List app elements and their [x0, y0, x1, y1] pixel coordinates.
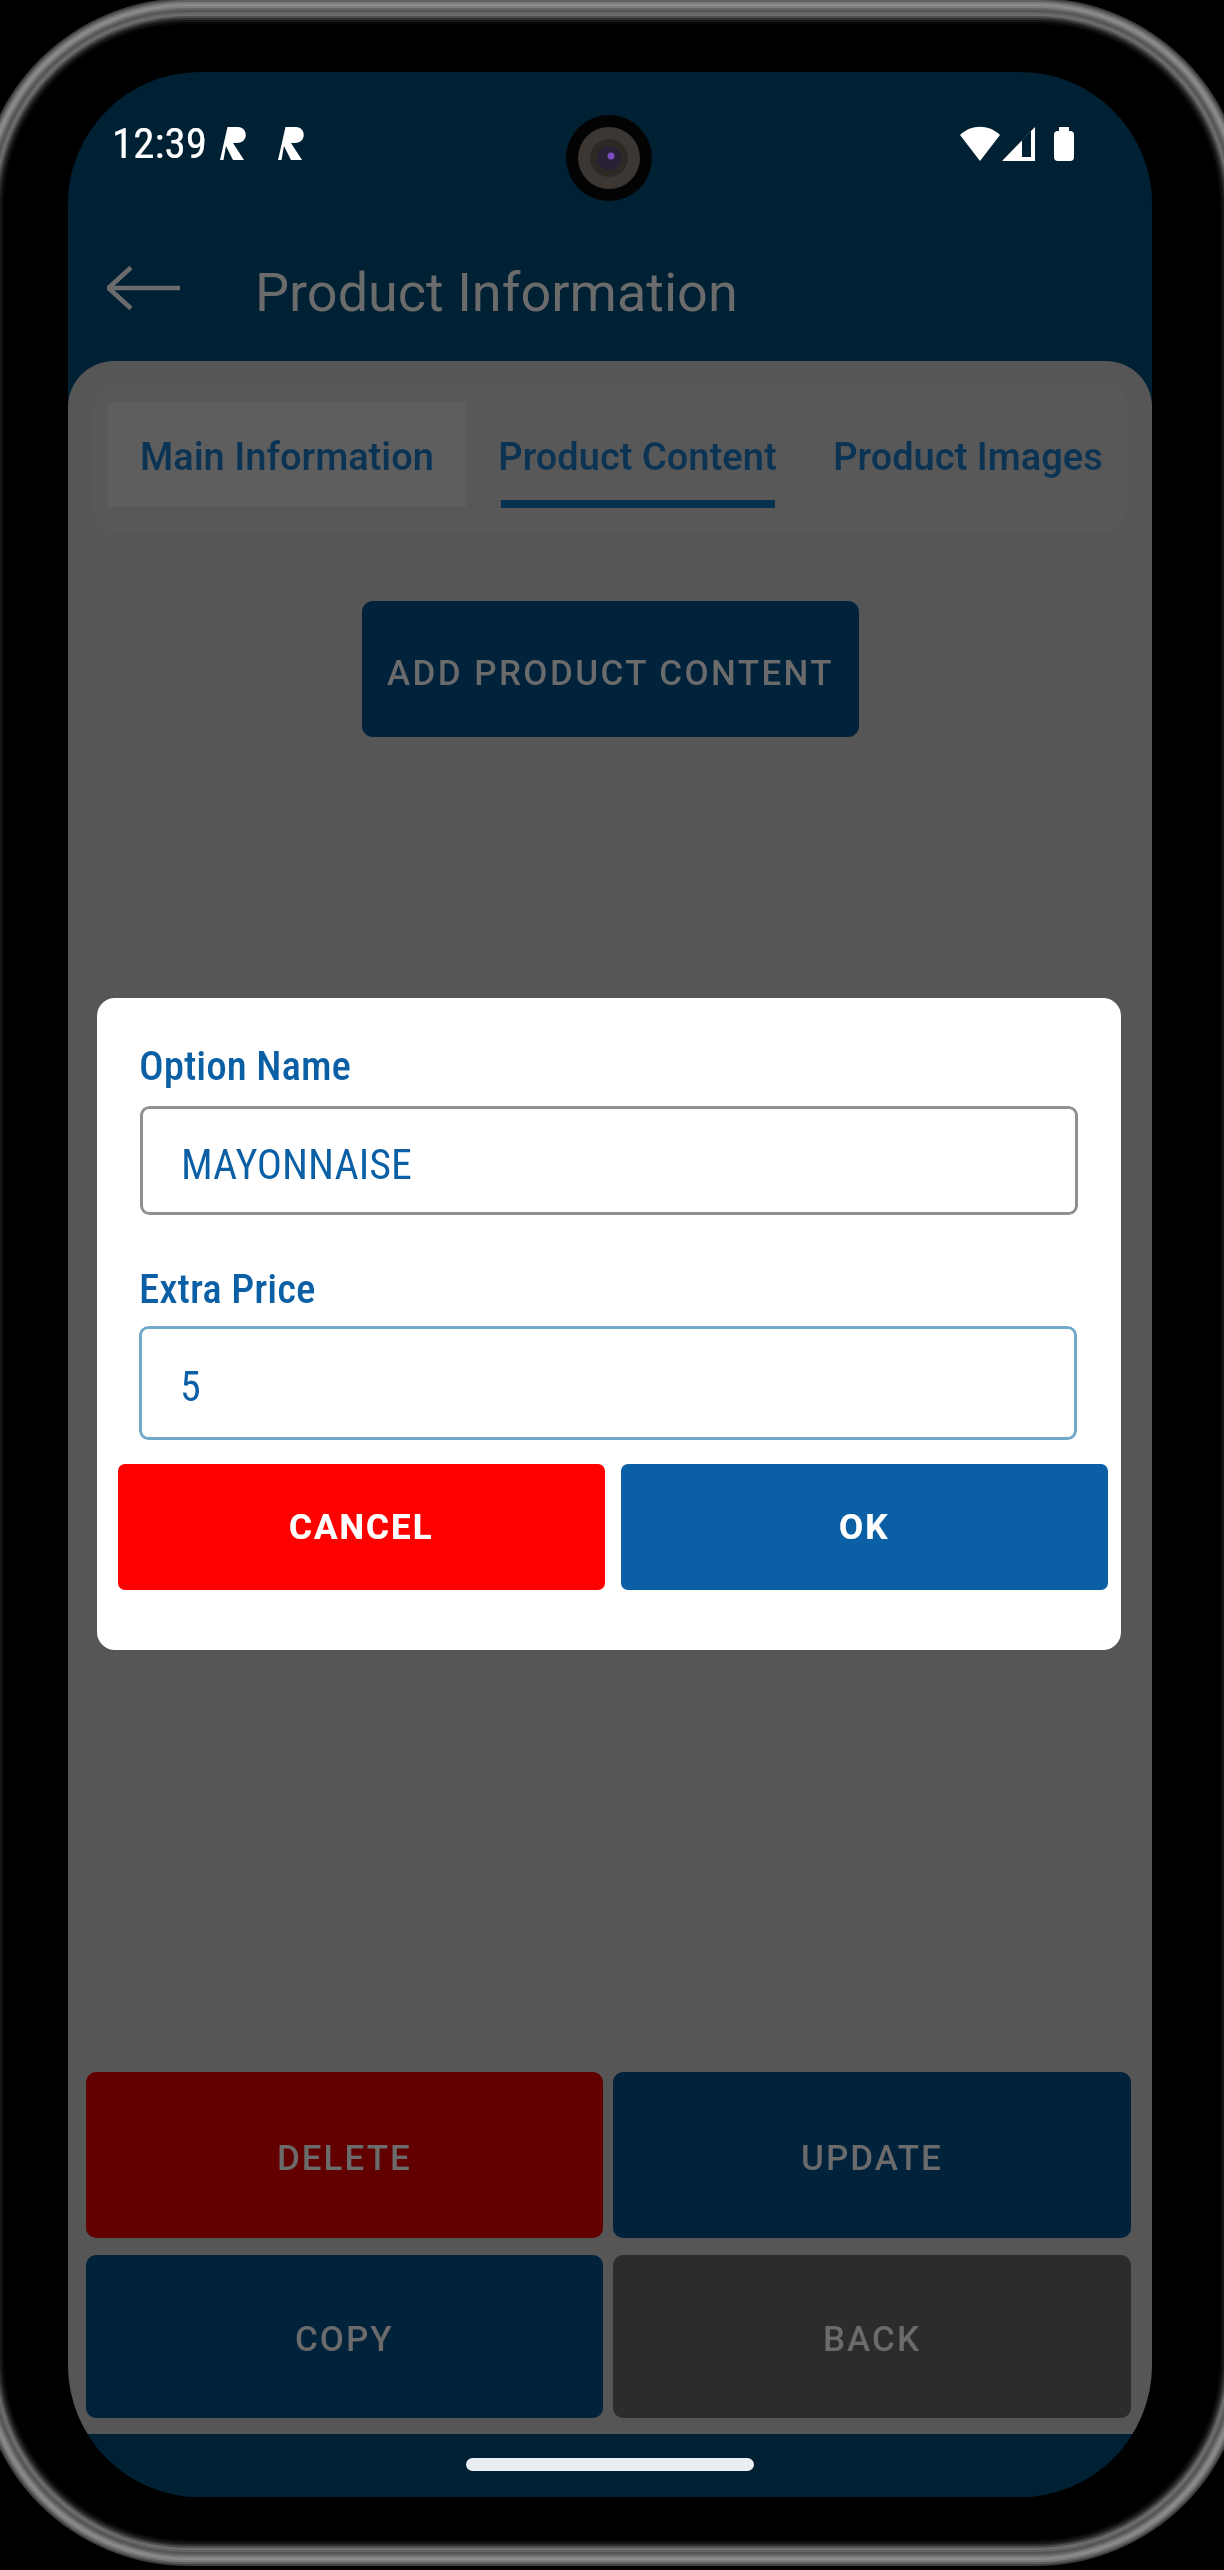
staticText: BACK	[823, 2319, 922, 2360]
button[interactable]: CANCEL	[118, 1464, 605, 1590]
button[interactable]: Back	[80, 228, 208, 348]
staticText: DELETE	[277, 2138, 412, 2179]
button[interactable]: OK	[621, 1464, 1108, 1590]
staticText: 12:39	[112, 118, 207, 168]
staticText: OK	[839, 1507, 890, 1548]
staticText: 5	[180, 1362, 201, 1411]
staticText: Main Information	[140, 435, 434, 480]
staticText: Product Images	[833, 435, 1103, 480]
button[interactable]: Product Content	[466, 383, 808, 533]
button[interactable]: 5	[139, 1326, 1077, 1440]
staticText: Option Name	[139, 1042, 351, 1090]
staticText: MAYONNAISE	[181, 1140, 412, 1189]
staticText: UPDATE	[801, 2138, 943, 2179]
staticText: Extra Price	[139, 1265, 316, 1313]
button[interactable]: COPY	[86, 2255, 603, 2418]
staticText: CANCEL	[289, 1507, 434, 1548]
button[interactable]: Main Information	[108, 402, 466, 507]
button[interactable]: DELETE	[86, 2072, 603, 2238]
staticText: Product Information	[255, 261, 738, 324]
button[interactable]: UPDATE	[613, 2072, 1131, 2238]
button[interactable]: Product Images	[808, 383, 1127, 533]
staticText: Product Content	[498, 435, 777, 480]
button[interactable]: ADD PRODUCT CONTENT	[362, 601, 859, 737]
button[interactable]: MAYONNAISE	[140, 1106, 1078, 1215]
staticText: COPY	[295, 2319, 394, 2360]
staticText: ADD PRODUCT CONTENT	[387, 653, 835, 694]
button[interactable]: BACK	[613, 2255, 1131, 2418]
